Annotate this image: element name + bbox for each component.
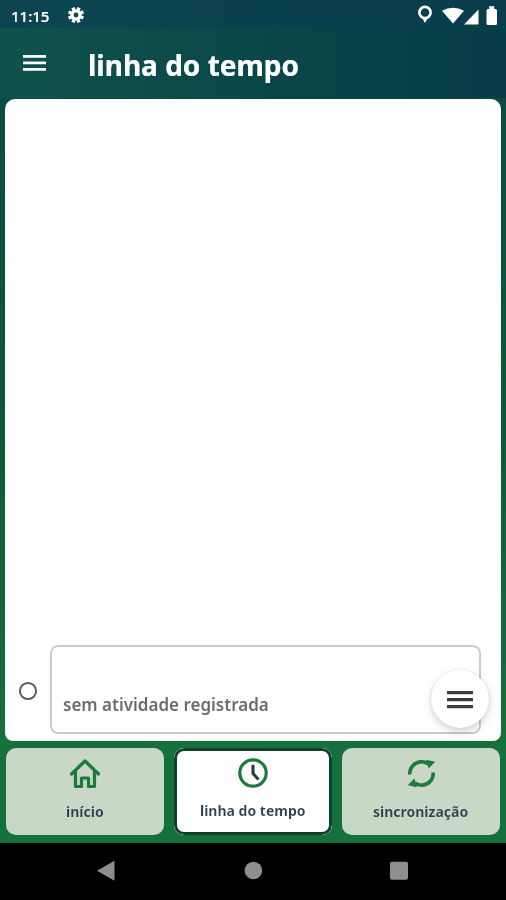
button[interactable] [431,670,489,728]
staticText: sincronização [373,802,469,821]
button[interactable] [223,843,283,900]
button[interactable] [77,843,137,900]
button[interactable]: início [6,748,164,835]
staticText: início [66,802,104,821]
staticText: 11:15 [11,6,50,26]
staticText: sem atividade registrada [63,693,269,716]
button[interactable] [369,843,429,900]
button[interactable] [13,45,55,81]
button[interactable]: linha do tempo [174,748,332,835]
button[interactable]: sincronização [342,748,500,835]
staticText: linha do tempo [88,46,300,84]
staticText: linha do tempo [200,801,306,820]
button[interactable]: sem atividade registrada [50,645,481,734]
